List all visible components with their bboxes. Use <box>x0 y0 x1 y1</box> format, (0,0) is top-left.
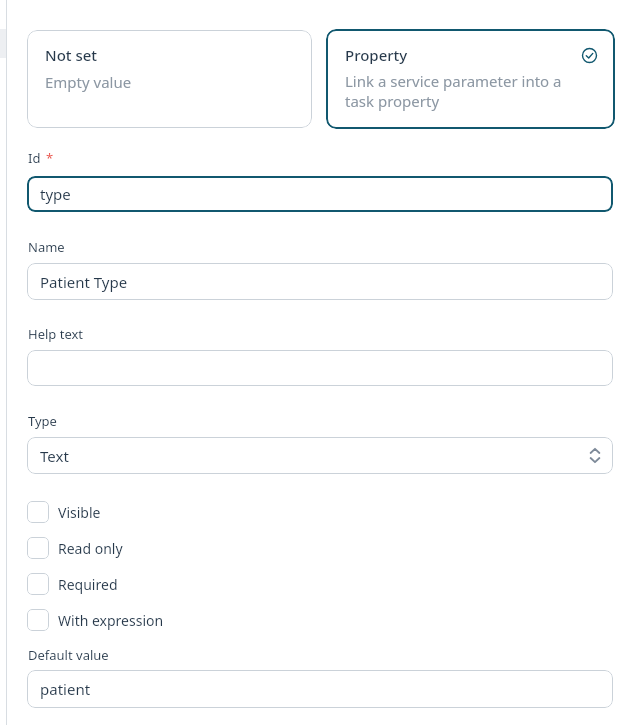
staticText: Property <box>345 45 586 65</box>
staticText: Name <box>28 238 65 256</box>
button[interactable]: Read only <box>27 537 123 559</box>
button[interactable]: Property <box>326 29 615 129</box>
button[interactable]: Visible <box>27 501 101 523</box>
staticText: Patient Type <box>40 272 128 292</box>
button[interactable] <box>27 350 613 386</box>
staticText: Type <box>28 412 57 430</box>
staticText: Not set <box>45 45 98 65</box>
button[interactable]: Patient Type <box>27 263 613 300</box>
staticText: Help text <box>28 325 84 343</box>
button[interactable]: patient <box>27 670 613 708</box>
staticText: * <box>46 149 54 167</box>
button[interactable]: Text <box>27 437 613 474</box>
staticText: Read only <box>58 539 123 558</box>
button[interactable]: type <box>27 176 613 212</box>
staticText: patient <box>40 679 91 699</box>
staticText: type <box>40 184 71 204</box>
staticText: Text <box>40 446 69 466</box>
staticText: Id <box>28 149 41 167</box>
staticText: Default value <box>28 646 109 664</box>
button[interactable]: Not set <box>27 30 312 128</box>
staticText: With expression <box>58 611 164 630</box>
staticText: Link a service parameter into a task pro… <box>345 71 562 111</box>
staticText: Visible <box>58 503 101 522</box>
staticText: Required <box>58 575 118 594</box>
button[interactable]: With expression <box>27 609 164 631</box>
staticText: Empty value <box>45 72 132 92</box>
button[interactable]: Required <box>27 573 118 595</box>
